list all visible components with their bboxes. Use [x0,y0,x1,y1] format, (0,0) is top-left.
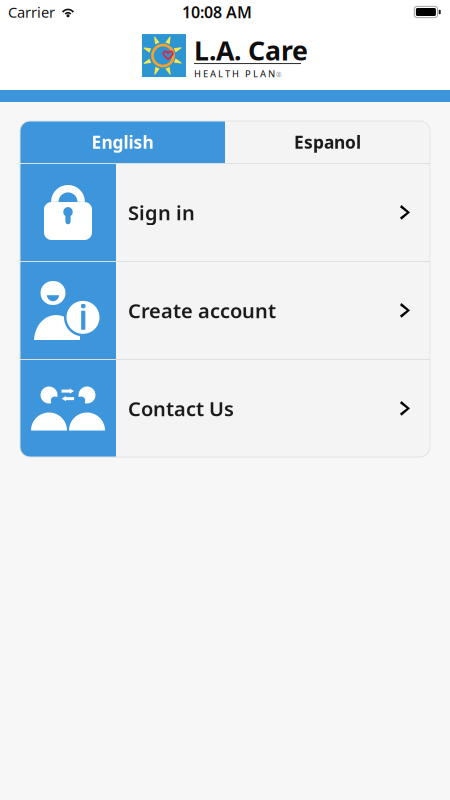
staticText: English [91,130,153,153]
staticText: H E A L T H P L A N [194,68,275,80]
staticText: Contact Us [128,395,234,422]
button[interactable]: Espanol [225,121,430,163]
button[interactable]: Sign in [20,164,430,261]
staticText: L.A. Care [194,32,308,68]
staticText: Espanol [294,130,361,153]
button[interactable]: i [20,262,430,359]
staticText: ® [276,71,282,79]
staticText: Carrier [8,2,55,22]
staticText: 10:08 AM [182,1,252,23]
staticText: Sign in [128,199,195,226]
button[interactable]: English [20,121,225,163]
staticText: i [78,295,87,339]
button[interactable]: Contact Us [20,360,430,457]
staticText: Create account [128,297,276,324]
